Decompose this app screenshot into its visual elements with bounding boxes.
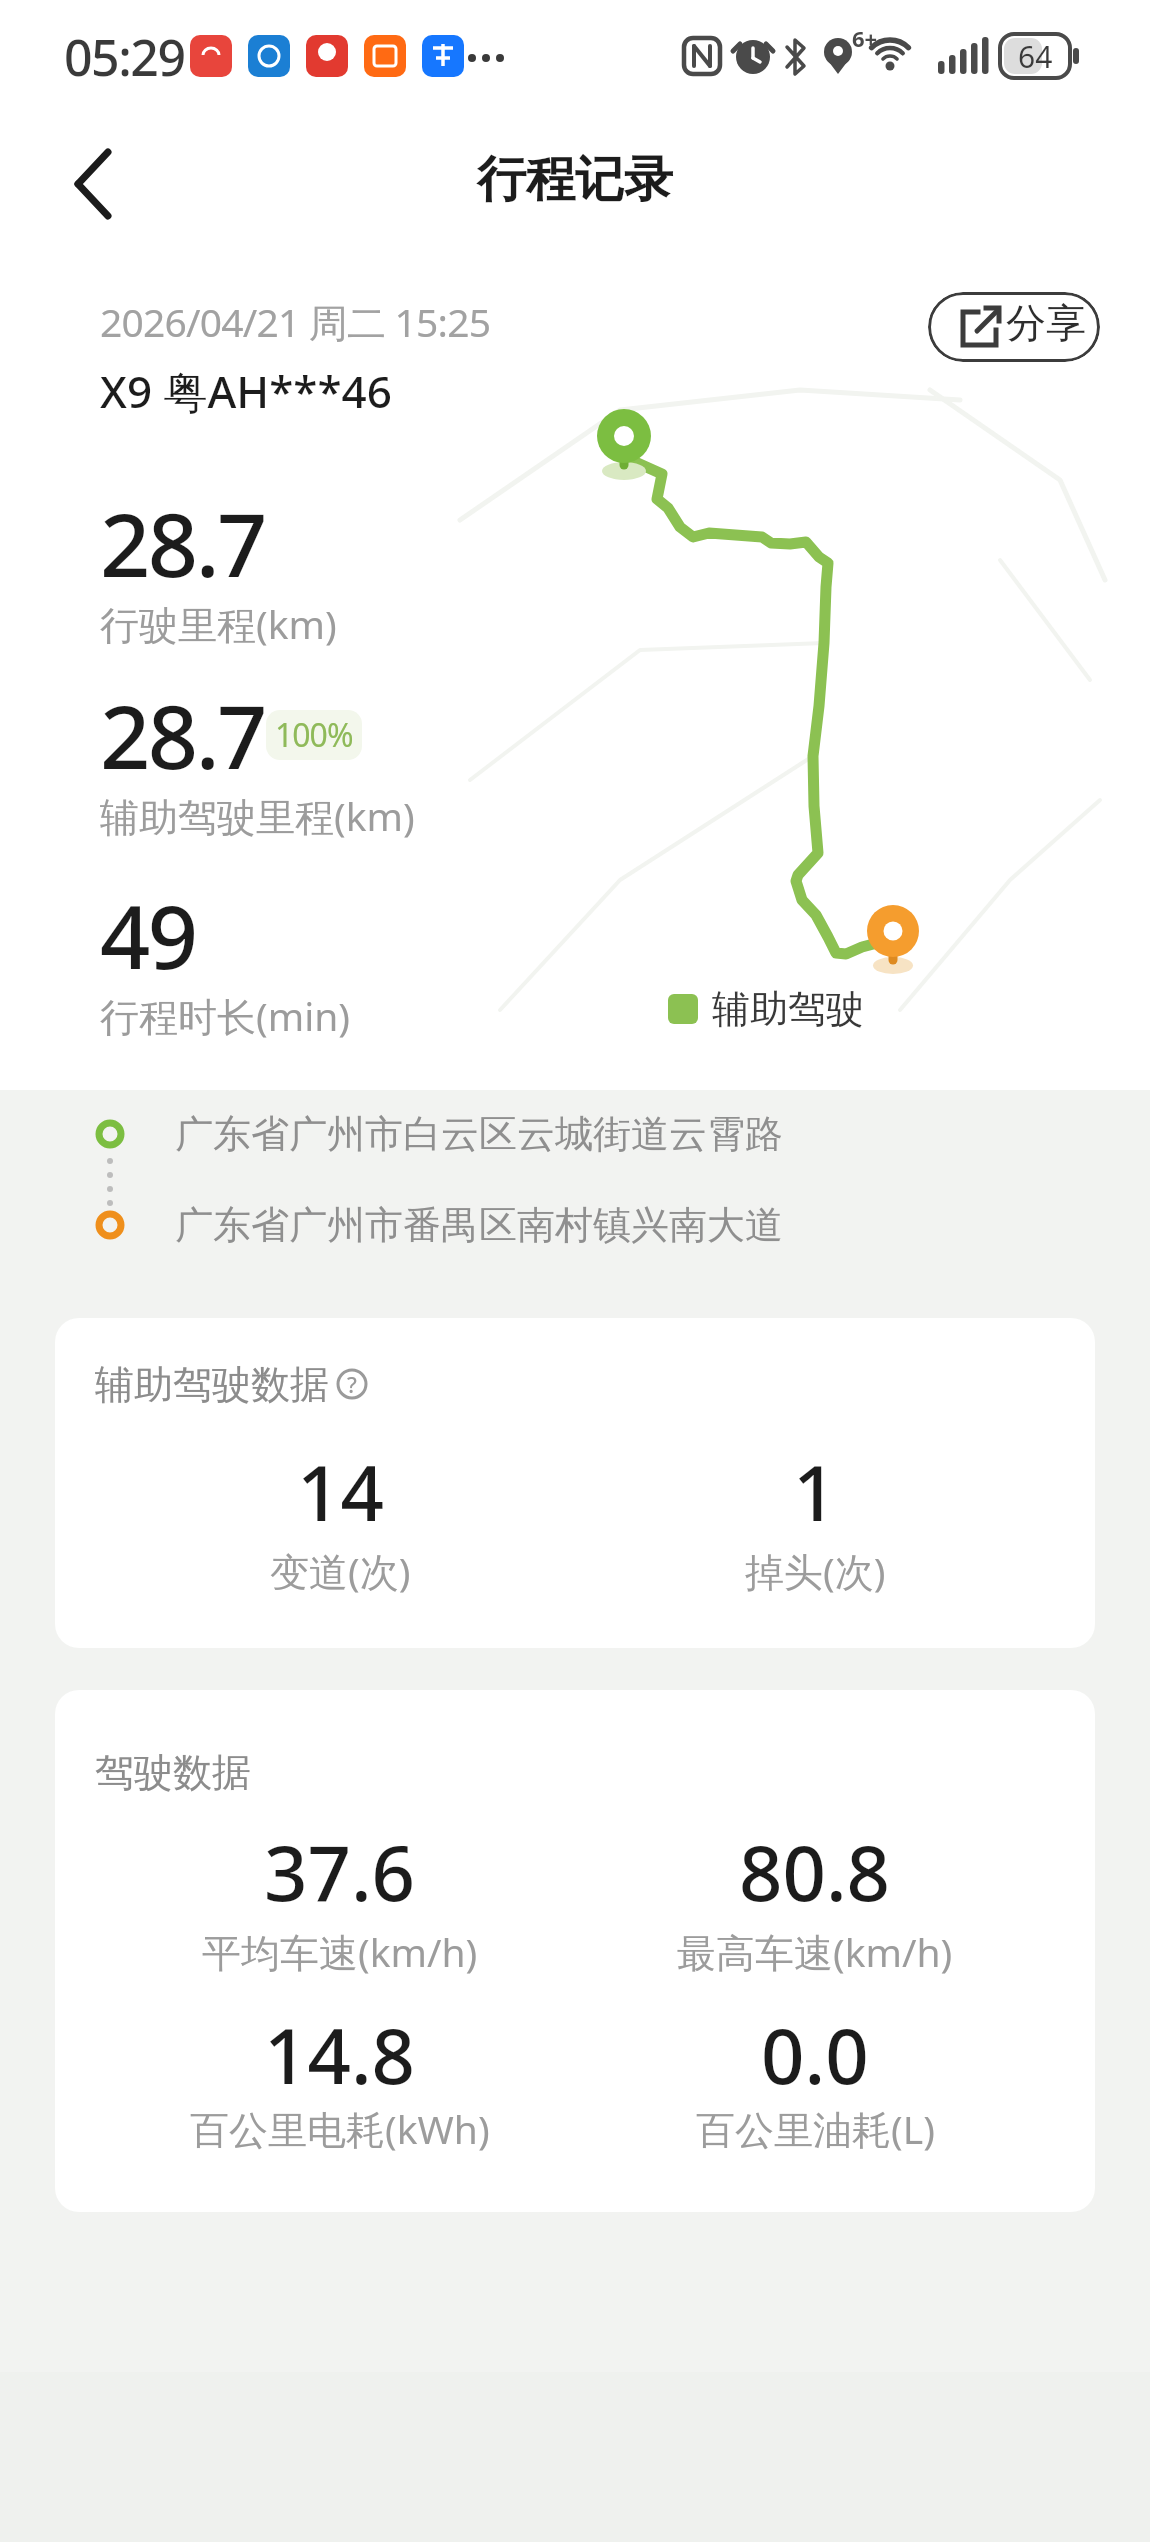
staticText: 分享	[1006, 298, 1086, 348]
staticText: 6+	[852, 23, 878, 53]
button[interactable]	[60, 140, 150, 230]
staticText: 最高车速(km/h)	[677, 1925, 953, 1978]
staticText: 掉头(次)	[745, 1544, 886, 1597]
button[interactable]	[55, 1690, 1095, 2212]
staticText: 百公里油耗(L)	[696, 2102, 935, 2155]
staticText: 百公里电耗(kWh)	[190, 2102, 490, 2155]
staticText: 28.7	[100, 675, 265, 795]
staticText: 49	[100, 875, 196, 995]
staticText: 辅助驾驶里程(km)	[100, 789, 415, 842]
staticText: 0.0	[761, 2003, 869, 2107]
staticText: 广东省广州市番禺区南村镇兴南大道	[175, 1201, 783, 1249]
staticText: 平均车速(km/h)	[202, 1925, 478, 1978]
staticText: 驾驶数据	[95, 1748, 251, 1797]
staticText: 1	[793, 1440, 837, 1544]
button[interactable]: 分享	[928, 292, 1100, 362]
staticText: 14.8	[264, 2003, 416, 2107]
button[interactable]	[55, 1318, 1095, 1648]
staticText: 变道(次)	[270, 1544, 411, 1597]
staticText: 行程记录	[477, 149, 673, 211]
staticText: X9 粤AH***46	[100, 361, 392, 421]
staticText: 行程时长(min)	[100, 989, 351, 1042]
staticText: 37.6	[264, 1820, 416, 1924]
staticText: 辅助驾驶数据	[95, 1360, 329, 1409]
staticText: 辅助驾驶	[712, 985, 864, 1033]
staticText: 广东省广州市白云区云城街道云霄路	[175, 1110, 783, 1158]
staticText: 64	[1018, 36, 1053, 77]
staticText: 2026/04/21 周二 15:25	[100, 295, 491, 348]
staticText: 行驶里程(km)	[100, 597, 337, 650]
staticText: 80.8	[739, 1820, 891, 1924]
staticText: ?	[347, 1369, 357, 1399]
staticText: 28.7	[100, 483, 265, 603]
staticText: 14	[297, 1440, 384, 1544]
staticText: 100%	[275, 713, 353, 757]
staticText: 05:29	[64, 23, 185, 91]
